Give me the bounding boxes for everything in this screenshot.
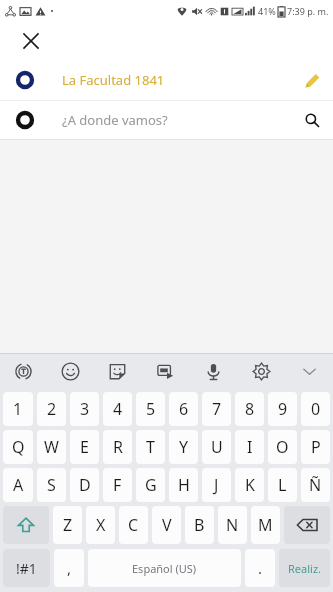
staticText: , (67, 558, 72, 578)
button[interactable]: N (218, 506, 247, 544)
button[interactable]: S (37, 468, 66, 502)
button[interactable]: R (103, 430, 132, 464)
button[interactable]: A (3, 468, 33, 502)
staticText: M (258, 514, 273, 536)
staticText: Q (12, 436, 25, 458)
button[interactable]: Close (18, 28, 44, 54)
button[interactable]: X (86, 506, 115, 544)
staticText: J (214, 474, 219, 496)
staticText: ¿A donde vamos? (62, 111, 168, 129)
staticText: C (128, 514, 139, 536)
staticText: A (13, 474, 24, 496)
staticText: K (245, 474, 255, 496)
button[interactable]: G (136, 468, 165, 502)
staticText: S (47, 474, 56, 496)
button[interactable]: Translate (0, 354, 47, 388)
button[interactable]: P (301, 430, 330, 464)
staticText: 41% (258, 5, 276, 17)
staticText: H (178, 474, 190, 496)
staticText: R (113, 436, 123, 458)
button[interactable]: 1 (3, 392, 33, 426)
staticText: 7 (212, 398, 222, 420)
staticText: I (247, 436, 253, 458)
button[interactable]: U (202, 430, 231, 464)
staticText: T (146, 436, 155, 458)
staticText: Español (US) (132, 561, 197, 576)
staticText: Ñ (309, 474, 322, 496)
staticText: P (311, 436, 321, 458)
button[interactable]: V (152, 506, 181, 544)
staticText: 3 (80, 398, 90, 420)
button[interactable]: Shift (3, 506, 49, 544)
staticText: La Facultad 1841 (62, 71, 165, 89)
staticText: N (226, 514, 239, 536)
button[interactable]: Edit (297, 65, 327, 95)
button[interactable]: Search (297, 105, 327, 135)
button[interactable]: 7 (202, 392, 231, 426)
staticText: 0 (311, 398, 321, 420)
staticText: Y (179, 436, 189, 458)
button[interactable]: I (235, 430, 264, 464)
button[interactable]: L (268, 468, 297, 502)
button[interactable]: D (70, 468, 99, 502)
staticText: L (278, 474, 287, 496)
staticText: 5 (146, 398, 156, 420)
staticText: 6 (179, 398, 189, 420)
button[interactable]: Q (3, 430, 33, 464)
button[interactable]: 4 (103, 392, 132, 426)
button[interactable]: H (169, 468, 198, 502)
button[interactable]: B (185, 506, 214, 544)
button[interactable]: GIF (141, 354, 189, 388)
staticText: 8 (245, 398, 255, 420)
button[interactable]: O (268, 430, 297, 464)
button[interactable]: !#1 (3, 549, 50, 587)
button[interactable]: ¿A donde vamos? (0, 101, 333, 139)
staticText: U (211, 436, 223, 458)
staticText: !#1 (16, 559, 37, 578)
button[interactable]: W (37, 430, 66, 464)
button[interactable]: 5 (136, 392, 165, 426)
button[interactable]: Z (53, 506, 82, 544)
button[interactable]: K (235, 468, 264, 502)
button[interactable]: E (70, 430, 99, 464)
button[interactable]: Stickers (94, 354, 141, 388)
button[interactable]: M (251, 506, 280, 544)
button[interactable]: La Facultad 1841 (0, 60, 333, 100)
button[interactable]: Emoji (47, 354, 94, 388)
button[interactable]: Español (US) (88, 549, 241, 587)
staticText: V (162, 514, 172, 536)
button[interactable]: , (54, 549, 84, 587)
staticText: Z (63, 514, 73, 536)
button[interactable]: 6 (169, 392, 198, 426)
button[interactable]: Y (169, 430, 198, 464)
staticText: E (80, 436, 89, 458)
button[interactable]: Realiz. (279, 549, 330, 587)
staticText: 1 (13, 398, 23, 420)
button[interactable]: T (136, 430, 165, 464)
staticText: B (194, 514, 205, 536)
button[interactable]: Ñ (301, 468, 330, 502)
staticText: O (276, 436, 289, 458)
staticText: 9 (278, 398, 288, 420)
staticText: 7:39 p. m. (287, 5, 329, 17)
button[interactable]: . (245, 549, 275, 587)
button[interactable]: 2 (37, 392, 66, 426)
staticText: 4 (113, 398, 123, 420)
button[interactable]: 9 (268, 392, 297, 426)
button[interactable]: Settings (237, 354, 285, 388)
button[interactable]: J (202, 468, 231, 502)
button[interactable]: 0 (301, 392, 330, 426)
button[interactable]: 8 (235, 392, 264, 426)
staticText: F (113, 474, 122, 496)
staticText: . (258, 558, 263, 578)
button[interactable]: Hide keyboard (285, 354, 333, 388)
staticText: 2 (47, 398, 57, 420)
button[interactable]: Voice input (189, 354, 237, 388)
button[interactable]: F (103, 468, 132, 502)
button[interactable]: C (119, 506, 148, 544)
button[interactable]: Backspace (284, 506, 330, 544)
button[interactable]: 3 (70, 392, 99, 426)
staticText: X (96, 514, 106, 536)
staticText: G (145, 474, 157, 496)
staticText: Realiz. (288, 561, 322, 576)
